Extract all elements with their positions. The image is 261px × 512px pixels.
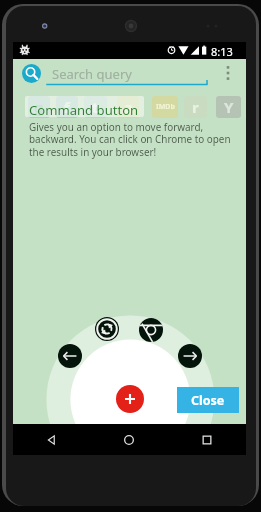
button[interactable]: r bbox=[184, 96, 207, 118]
button[interactable]: g bbox=[28, 96, 50, 118]
staticText: IMDb bbox=[156, 102, 175, 112]
staticText: Command button bbox=[29, 101, 139, 119]
button[interactable]: a bbox=[117, 96, 139, 118]
staticText: g bbox=[34, 97, 44, 117]
staticText: f bbox=[64, 97, 70, 117]
button[interactable]: Open in Chrome bbox=[139, 318, 163, 342]
button[interactable]: Back bbox=[13, 424, 90, 455]
button[interactable]: More options bbox=[218, 63, 238, 83]
button[interactable]: Refresh bbox=[95, 317, 119, 341]
button[interactable]: Add bbox=[116, 385, 144, 413]
button[interactable]: IMDb bbox=[152, 96, 178, 118]
staticText: Close bbox=[191, 392, 225, 409]
button[interactable] bbox=[25, 96, 144, 117]
button[interactable]: Close bbox=[177, 387, 239, 413]
button[interactable]: Home bbox=[90, 424, 168, 455]
button[interactable]: Forward bbox=[178, 344, 202, 368]
button[interactable]: Back bbox=[58, 344, 82, 368]
staticText: 8:13 bbox=[211, 44, 233, 59]
staticText: t bbox=[92, 97, 99, 117]
staticText: Search query bbox=[52, 65, 132, 83]
staticText: r bbox=[192, 97, 199, 117]
button[interactable]: t bbox=[84, 96, 107, 118]
staticText: a bbox=[124, 97, 133, 117]
button[interactable]: Search bbox=[22, 64, 41, 83]
staticText: Gives you an option to move forward, bac… bbox=[29, 120, 231, 159]
staticText: Y bbox=[224, 97, 234, 117]
button[interactable]: Recents bbox=[168, 424, 246, 455]
button[interactable]: Y bbox=[216, 96, 241, 118]
button[interactable]: f bbox=[56, 96, 78, 118]
